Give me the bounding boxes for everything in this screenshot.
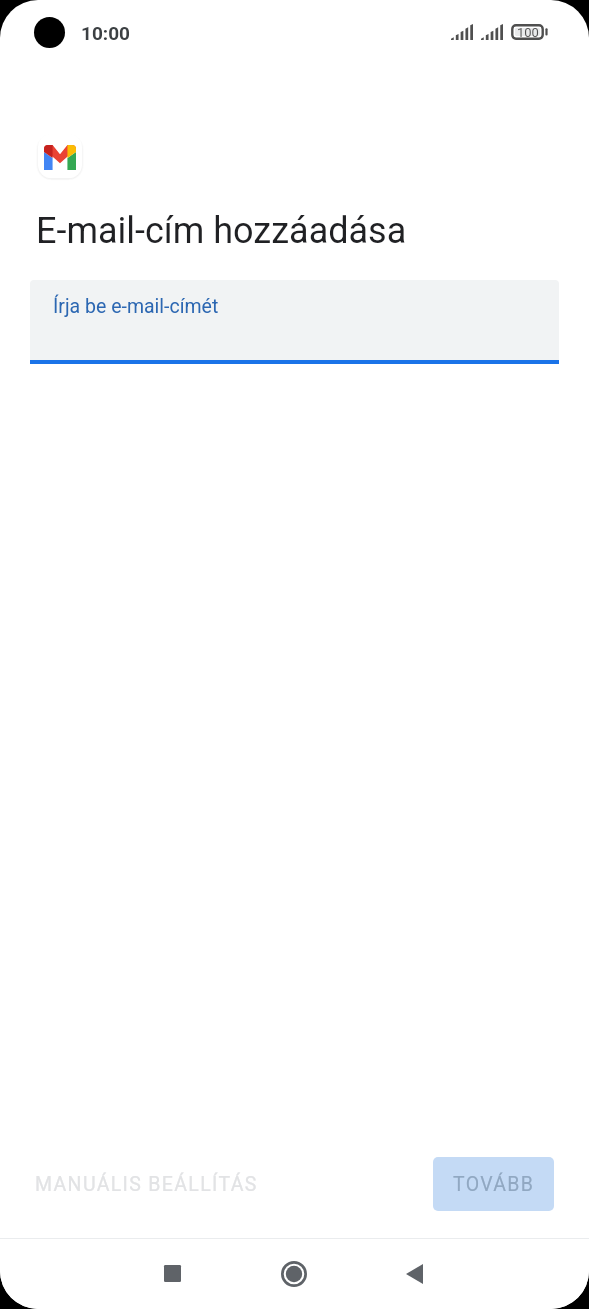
button[interactable]: TOVÁBB [433,1157,554,1211]
button[interactable]: Recent apps [134,1238,210,1309]
button[interactable]: Home [256,1238,332,1309]
staticText: MANUÁLIS BEÁLLÍTÁS [35,1173,258,1196]
staticText: 10:00 [81,22,130,44]
staticText: 100 [517,25,539,40]
button[interactable]: MANUÁLIS BEÁLLÍTÁS [23,1163,270,1206]
button[interactable]: Írja be e-mail-címét [30,280,559,364]
staticText: TOVÁBB [453,1173,535,1196]
button[interactable]: Back [376,1238,452,1309]
staticText: Írja be e-mail-címét [53,295,219,318]
staticText: E-mail-cím hozzáadása [36,210,407,252]
